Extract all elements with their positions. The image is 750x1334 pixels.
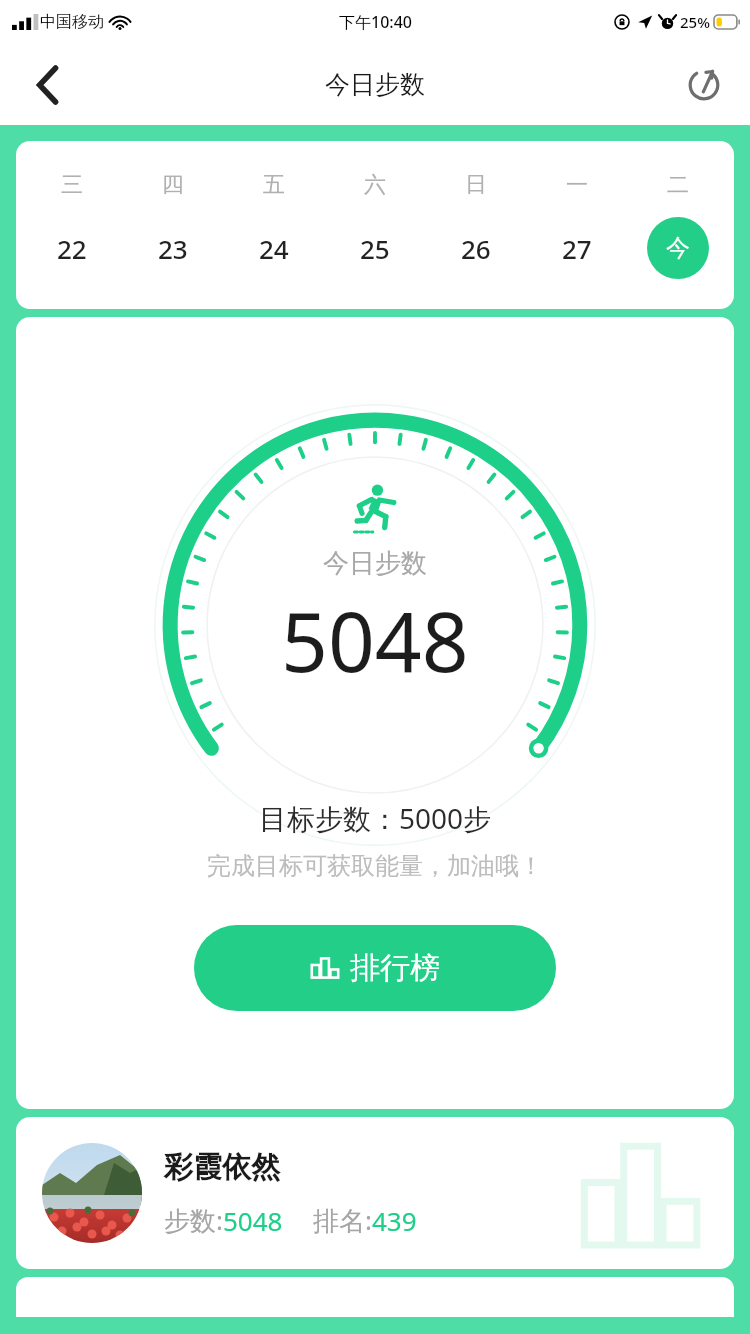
button[interactable]: 一 <box>526 141 627 309</box>
staticText: 5048 <box>281 584 469 696</box>
button[interactable]: 三 <box>22 141 122 309</box>
staticText: 25 <box>360 231 390 266</box>
staticText: 四 <box>162 171 184 199</box>
staticText: 今日步数 <box>323 547 427 580</box>
staticText: 完成目标可获取能量，加油哦！ <box>207 851 543 881</box>
button[interactable]: 四 <box>122 141 223 309</box>
staticText: 排名: <box>313 1202 372 1238</box>
staticText: 23 <box>158 231 188 266</box>
staticText: 439 <box>372 1203 417 1238</box>
button[interactable]: Back <box>20 57 76 113</box>
button[interactable]: 排行榜 <box>194 925 556 1011</box>
staticText: 5048 <box>223 1203 283 1238</box>
staticText: 24 <box>259 231 289 266</box>
staticText: 今日步数 <box>325 69 425 100</box>
staticText: 步数: <box>164 1202 223 1238</box>
staticText: 今 <box>666 233 690 263</box>
staticText: 六 <box>364 171 386 199</box>
staticText: 三 <box>61 171 83 199</box>
staticText: 五 <box>263 171 285 199</box>
button[interactable]: 二 <box>627 141 728 309</box>
staticText: 一 <box>566 171 588 199</box>
button[interactable]: 日 <box>425 141 526 309</box>
button[interactable]: Refresh <box>676 57 732 113</box>
staticText: 日 <box>465 171 487 199</box>
staticText: 彩霞依然 <box>164 1149 280 1186</box>
staticText: 25% <box>680 12 710 32</box>
staticText: 26 <box>461 231 491 266</box>
staticText: 27 <box>562 231 592 266</box>
staticText: 二 <box>667 171 689 199</box>
button[interactable]: 五 <box>223 141 324 309</box>
button[interactable]: 六 <box>324 141 425 309</box>
button[interactable]: 彩霞依然 <box>16 1117 734 1269</box>
staticText: 中国移动 <box>40 12 104 32</box>
staticText: 排行榜 <box>350 949 440 987</box>
staticText: 下午10:40 <box>339 11 412 33</box>
staticText: 目标步数：5000步 <box>259 799 492 837</box>
staticText: 22 <box>57 231 87 266</box>
